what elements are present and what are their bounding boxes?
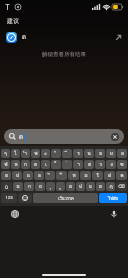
staticText: ะ	[44, 150, 47, 157]
button[interactable]: 123	[1, 193, 17, 203]
button[interactable]: ด	[4, 129, 124, 144]
button[interactable]: แ	[23, 171, 33, 180]
button[interactable]: ฅ	[116, 171, 127, 180]
staticText: ง	[110, 161, 113, 168]
button[interactable]: ิ	[45, 171, 55, 180]
button[interactable]: อ	[34, 171, 44, 180]
staticText: แ	[89, 183, 92, 190]
button[interactable]: ด	[31, 160, 40, 169]
button[interactable]: ใ	[92, 171, 103, 180]
staticText: ย	[99, 150, 102, 157]
button[interactable]: Clear text	[111, 133, 119, 141]
button[interactable]: า	[73, 160, 83, 169]
staticText: 解锁查看所有结果	[0, 51, 128, 58]
button[interactable]: พ	[31, 149, 40, 158]
staticText: ด	[34, 161, 37, 168]
button[interactable]: Voice input	[108, 208, 119, 219]
staticText: ฟ	[4, 161, 8, 168]
button[interactable]: ฟ	[1, 160, 10, 169]
staticText: บ	[110, 150, 113, 157]
button[interactable]: ไ	[11, 149, 20, 158]
button[interactable]: ป	[76, 182, 85, 191]
button[interactable]: Shift	[1, 182, 12, 191]
staticText: ท	[72, 172, 76, 179]
button[interactable]: ก	[24, 182, 34, 191]
staticText: ป	[79, 183, 82, 190]
staticText: ด	[19, 132, 23, 142]
button[interactable]: ฃ	[117, 160, 127, 169]
button[interactable]: ฝ	[104, 171, 115, 180]
staticText: ว	[99, 161, 102, 168]
button[interactable]: ท	[68, 171, 79, 180]
button[interactable]: ผ	[66, 182, 75, 191]
button[interactable]: ผ	[1, 171, 11, 180]
button[interactable]: ฦ	[106, 182, 115, 191]
button[interactable]: ไปยัง	[99, 193, 127, 203]
button[interactable]: บ	[106, 149, 116, 158]
button[interactable]: ุ	[46, 182, 55, 191]
staticText: ส	[88, 161, 91, 168]
staticText: า	[77, 161, 80, 168]
staticText: ป	[16, 172, 19, 179]
staticText: เ	[45, 161, 47, 168]
button[interactable]: ะ	[41, 149, 50, 158]
button[interactable]: ู	[56, 182, 65, 191]
staticText: ⌫	[118, 184, 125, 189]
staticText: 123	[5, 195, 13, 201]
button[interactable]: ง	[106, 160, 116, 169]
button[interactable]: ั	[51, 149, 61, 158]
staticText: ร	[77, 150, 80, 157]
staticText: ฅ	[120, 172, 124, 179]
staticText: ก	[24, 161, 27, 168]
staticText: ไปยัง	[108, 195, 118, 202]
staticText: ใ	[96, 172, 99, 179]
button[interactable]: ห	[11, 160, 20, 169]
button[interactable]: ม	[13, 182, 23, 191]
staticText: เว้นวรรค	[58, 195, 74, 201]
staticText: พ	[34, 150, 38, 157]
staticText: ฝ	[108, 172, 111, 179]
staticText: ไ	[14, 150, 17, 157]
staticText: ฃ	[120, 161, 124, 168]
staticText: û	[5, 184, 8, 190]
button[interactable]: ้	[51, 160, 61, 169]
button[interactable]: ร	[73, 149, 83, 158]
button[interactable]: ถ	[35, 182, 45, 191]
button[interactable]: Backspace	[116, 182, 127, 191]
button[interactable]: ี	[62, 149, 72, 158]
button[interactable]: ม	[80, 171, 91, 180]
staticText: ก	[28, 183, 31, 190]
staticText: ๆ	[4, 150, 7, 157]
button[interactable]: ล	[117, 149, 127, 158]
staticText: อ	[99, 183, 102, 190]
staticText: อ	[38, 172, 41, 179]
staticText: ถ	[39, 183, 42, 190]
button[interactable]: ก	[21, 160, 30, 169]
staticText: ล	[121, 150, 124, 157]
button[interactable]: ื	[56, 171, 67, 180]
button[interactable]: Emoji	[18, 193, 32, 203]
staticText: น	[87, 150, 91, 157]
button[interactable]: อ	[96, 182, 105, 191]
button[interactable]: ่	[62, 160, 72, 169]
button[interactable]: ำ	[21, 149, 30, 158]
staticText: ผ	[5, 172, 8, 179]
button[interactable]: ๆ	[1, 149, 10, 158]
staticText: ม	[16, 183, 20, 190]
button[interactable]: Change keyboard	[9, 208, 20, 219]
button[interactable]: น	[84, 149, 94, 158]
staticText: ม	[84, 172, 88, 179]
staticText: ผ	[69, 183, 72, 190]
button[interactable]: เ	[41, 160, 50, 169]
staticText: ห	[14, 161, 18, 168]
button[interactable]: ย	[95, 149, 105, 158]
staticText: ฦ	[109, 183, 113, 190]
button[interactable]: แ	[86, 182, 95, 191]
button[interactable]: ป	[12, 171, 22, 180]
button[interactable]: ด	[0, 29, 128, 45]
staticText: ำ	[24, 150, 27, 157]
button[interactable]: ส	[84, 160, 94, 169]
button[interactable]: เว้นวรรค	[33, 193, 98, 203]
staticText: แ	[27, 172, 30, 179]
button[interactable]: ว	[95, 160, 105, 169]
